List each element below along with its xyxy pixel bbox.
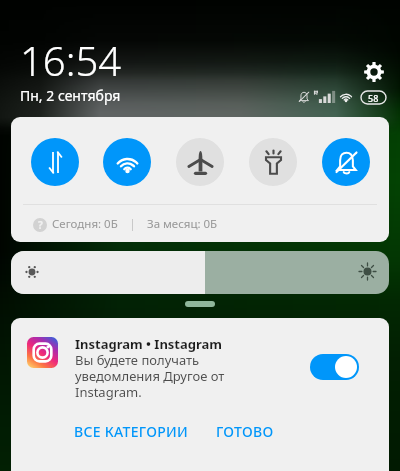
button[interactable]: Quick setting <box>249 138 297 186</box>
button[interactable]: Settings <box>364 62 384 82</box>
button[interactable]: ВСЕ КАТЕГОРИИ <box>64 412 199 451</box>
staticText: Вы будете получать уведомления Другое от… <box>75 351 235 400</box>
button[interactable]: Quick setting <box>31 138 79 186</box>
button[interactable]: ГОТОВО <box>206 412 284 451</box>
staticText: 58 <box>368 92 379 104</box>
staticText: Пн, 2 сентября <box>20 86 121 105</box>
staticText: Сегодня: 0Б <box>52 216 118 232</box>
staticText: За месяц: 0Б <box>147 216 218 232</box>
button[interactable]: Brightness <box>11 251 389 294</box>
button[interactable]: Notification toggle <box>310 354 359 380</box>
button[interactable]: Quick setting <box>176 138 224 186</box>
button[interactable]: Quick setting <box>103 138 151 186</box>
staticText: ? <box>38 218 43 232</box>
staticText: 16:54 <box>20 33 122 87</box>
staticText: Instagram • Instagram <box>75 335 223 353</box>
button[interactable]: Expand panel <box>185 301 215 307</box>
button[interactable]: Quick setting <box>322 138 370 186</box>
staticText: ВСЕ КАТЕГОРИИ <box>74 422 189 441</box>
staticText: ГОТОВО <box>216 422 274 441</box>
